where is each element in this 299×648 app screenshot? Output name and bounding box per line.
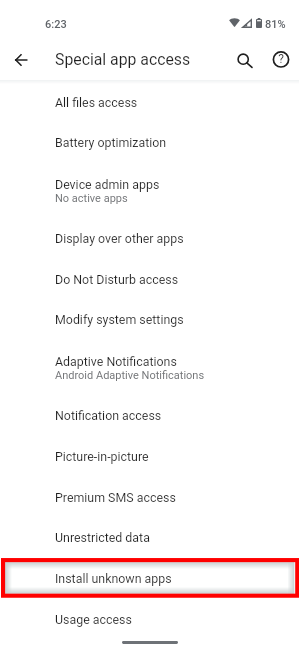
staticText: Special app access: [55, 50, 191, 69]
staticText: ?: [278, 52, 284, 66]
button[interactable]: Usage access: [0, 602, 299, 643]
button[interactable]: Unrestricted data: [0, 520, 299, 561]
staticText: All files access: [55, 95, 138, 110]
button[interactable]: Search: [227, 42, 258, 73]
staticText: Android Adaptive Notifications: [55, 369, 205, 382]
staticText: Install unknown apps: [55, 571, 172, 586]
button[interactable]: Battery optimization: [0, 125, 299, 166]
button[interactable]: Navigate up: [7, 46, 35, 74]
staticText: Premium SMS access: [55, 490, 176, 505]
staticText: Display over other apps: [55, 231, 184, 246]
button[interactable]: Do Not Disturb access: [0, 262, 299, 303]
button[interactable]: Install unknown apps: [0, 561, 299, 602]
button[interactable]: Premium SMS access: [0, 480, 299, 521]
button[interactable]: Modify system settings: [0, 302, 299, 343]
staticText: Notification access: [55, 408, 162, 423]
button[interactable]: Device admin apps: [0, 166, 299, 221]
staticText: Adaptive Notifications: [55, 354, 177, 369]
button[interactable]: Adaptive Notifications: [0, 343, 299, 398]
staticText: 81%: [265, 18, 286, 31]
staticText: Picture-in-picture: [55, 449, 149, 464]
staticText: No active apps: [55, 192, 128, 205]
staticText: Battery optimization: [55, 135, 167, 150]
staticText: Modify system settings: [55, 312, 184, 327]
staticText: Do Not Disturb access: [55, 272, 179, 287]
button[interactable]: Picture-in-picture: [0, 439, 299, 480]
button[interactable]: Help: [266, 45, 295, 74]
staticText: 6:23: [45, 18, 67, 31]
staticText: Device admin apps: [55, 177, 160, 192]
staticText: Unrestricted data: [55, 530, 150, 545]
button[interactable]: Display over other apps: [0, 221, 299, 262]
button[interactable]: All files access: [0, 85, 299, 126]
button[interactable]: Notification access: [0, 398, 299, 439]
staticText: Usage access: [55, 612, 132, 627]
